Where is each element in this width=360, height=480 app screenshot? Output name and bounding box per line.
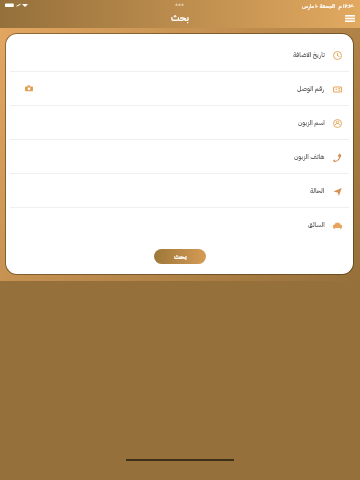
- button[interactable]: بحث: [154, 249, 206, 264]
- staticText: هاتف الزبون: [294, 152, 325, 161]
- staticText: السائق: [308, 220, 325, 229]
- button[interactable]: رقم الوصل: [6, 72, 353, 105]
- staticText: •••: [175, 0, 185, 10]
- button[interactable]: الحالة: [6, 174, 353, 207]
- button[interactable]: Menu: [339, 10, 360, 27]
- staticText: الحالة: [310, 186, 325, 195]
- button[interactable]: اسم الزبون: [6, 106, 353, 139]
- staticText: بحث: [174, 252, 187, 262]
- staticText: بحث: [171, 11, 189, 25]
- staticText: تاريخ الاضافة: [293, 50, 325, 59]
- staticText: اسم الزبون: [298, 118, 325, 127]
- button[interactable]: تاريخ الاضافة: [6, 38, 353, 71]
- staticText: ١٢:٣٠ م الجمعة ١٠ مارس: [302, 2, 355, 10]
- button[interactable]: السائق: [6, 208, 353, 241]
- button[interactable]: هاتف الزبون: [6, 140, 353, 173]
- staticText: رقم الوصل: [297, 84, 325, 93]
